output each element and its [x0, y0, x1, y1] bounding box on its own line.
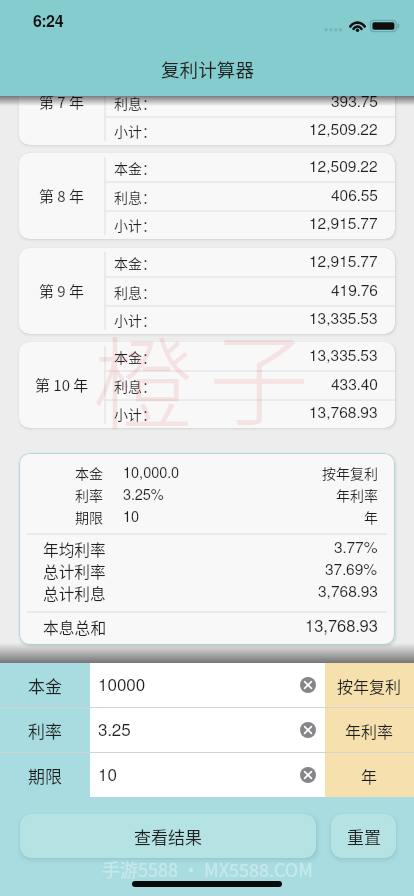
staticText: 12,915.77: [309, 217, 378, 233]
button[interactable]: 本金: [0, 663, 90, 707]
staticText: 37.69%: [325, 563, 378, 579]
staticText: 10000: [98, 677, 146, 694]
staticText: 利息：: [114, 376, 156, 396]
staticText: 第 8 年: [39, 185, 85, 207]
staticText: 年: [364, 507, 378, 527]
staticText: 小计：: [114, 121, 156, 141]
staticText: 10: [98, 767, 117, 784]
staticText: 433.40: [331, 378, 378, 394]
staticText: 本金: [75, 463, 103, 483]
staticText: 419.76: [331, 284, 378, 300]
staticText: 利息：: [114, 282, 156, 302]
staticText: 利息：: [114, 93, 156, 113]
staticText: 按年复利: [337, 674, 402, 697]
staticText: 年均利率: [43, 538, 106, 560]
button[interactable]: 第 8 年: [19, 153, 395, 239]
staticText: 子: [209, 301, 309, 446]
button[interactable]: 第 9 年: [19, 248, 395, 334]
button[interactable]: 重置: [331, 814, 396, 858]
staticText: 第 9 年: [39, 280, 85, 302]
button[interactable]: 第 7 年: [19, 59, 395, 145]
staticText: 橙: [93, 305, 193, 450]
staticText: 利率: [75, 485, 103, 505]
staticText: 查看结果: [134, 824, 202, 849]
staticText: 3.77%: [334, 541, 378, 557]
staticText: 利息：: [114, 187, 156, 207]
staticText: 本金：: [114, 158, 156, 178]
button[interactable]: Clear: [300, 677, 316, 693]
staticText: 本金：: [114, 253, 156, 273]
staticText: 12,509.22: [309, 160, 378, 176]
staticText: 393.75: [331, 95, 378, 111]
staticText: 按年复利: [322, 463, 378, 483]
staticText: 小计：: [114, 404, 156, 424]
button[interactable]: 利率: [0, 708, 90, 752]
staticText: 总计利息: [43, 582, 106, 604]
staticText: 复利计算器: [161, 55, 254, 82]
staticText: 10,000.0: [123, 466, 180, 481]
staticText: 年: [361, 764, 378, 787]
button[interactable]: Clear: [300, 722, 316, 738]
staticText: 3.25: [98, 722, 131, 739]
staticText: 本息总和: [43, 616, 107, 639]
staticText: 总计利率: [43, 560, 106, 582]
staticText: 12,509.22: [309, 123, 378, 139]
staticText: 重置: [347, 824, 381, 849]
staticText: 第 7 年: [39, 91, 85, 113]
staticText: 年利率: [345, 719, 394, 742]
button[interactable]: 查看结果: [20, 814, 316, 858]
staticText: 利率: [28, 718, 62, 743]
button[interactable]: 年: [325, 753, 414, 797]
staticText: 406.55: [331, 189, 378, 205]
staticText: 6:24: [33, 14, 64, 30]
button[interactable]: 按年复利: [325, 663, 414, 707]
button[interactable]: 第 10 年: [19, 342, 395, 428]
staticText: 本金: [28, 673, 62, 698]
staticText: 年利率: [336, 485, 378, 505]
staticText: 12,915.77: [309, 255, 378, 271]
staticText: 期限: [28, 763, 62, 788]
staticText: 13,768.93: [309, 406, 378, 422]
button[interactable]: 期限: [0, 753, 90, 797]
staticText: 小计：: [114, 310, 156, 330]
staticText: 13,768.93: [305, 619, 378, 635]
staticText: 10: [123, 510, 140, 525]
staticText: 手游5588 · MX5588.COM: [102, 856, 313, 882]
staticText: 本金：: [114, 347, 156, 367]
staticText: 13,335.53: [309, 349, 378, 365]
staticText: 小计：: [114, 215, 156, 235]
staticText: 13,335.53: [309, 312, 378, 328]
staticText: 3.25%: [123, 488, 164, 503]
button[interactable]: Clear: [300, 767, 316, 783]
staticText: 第 10 年: [35, 374, 89, 396]
staticText: 期限: [75, 507, 103, 527]
staticText: 3,768.93: [318, 585, 378, 601]
button[interactable]: 年利率: [325, 708, 414, 752]
